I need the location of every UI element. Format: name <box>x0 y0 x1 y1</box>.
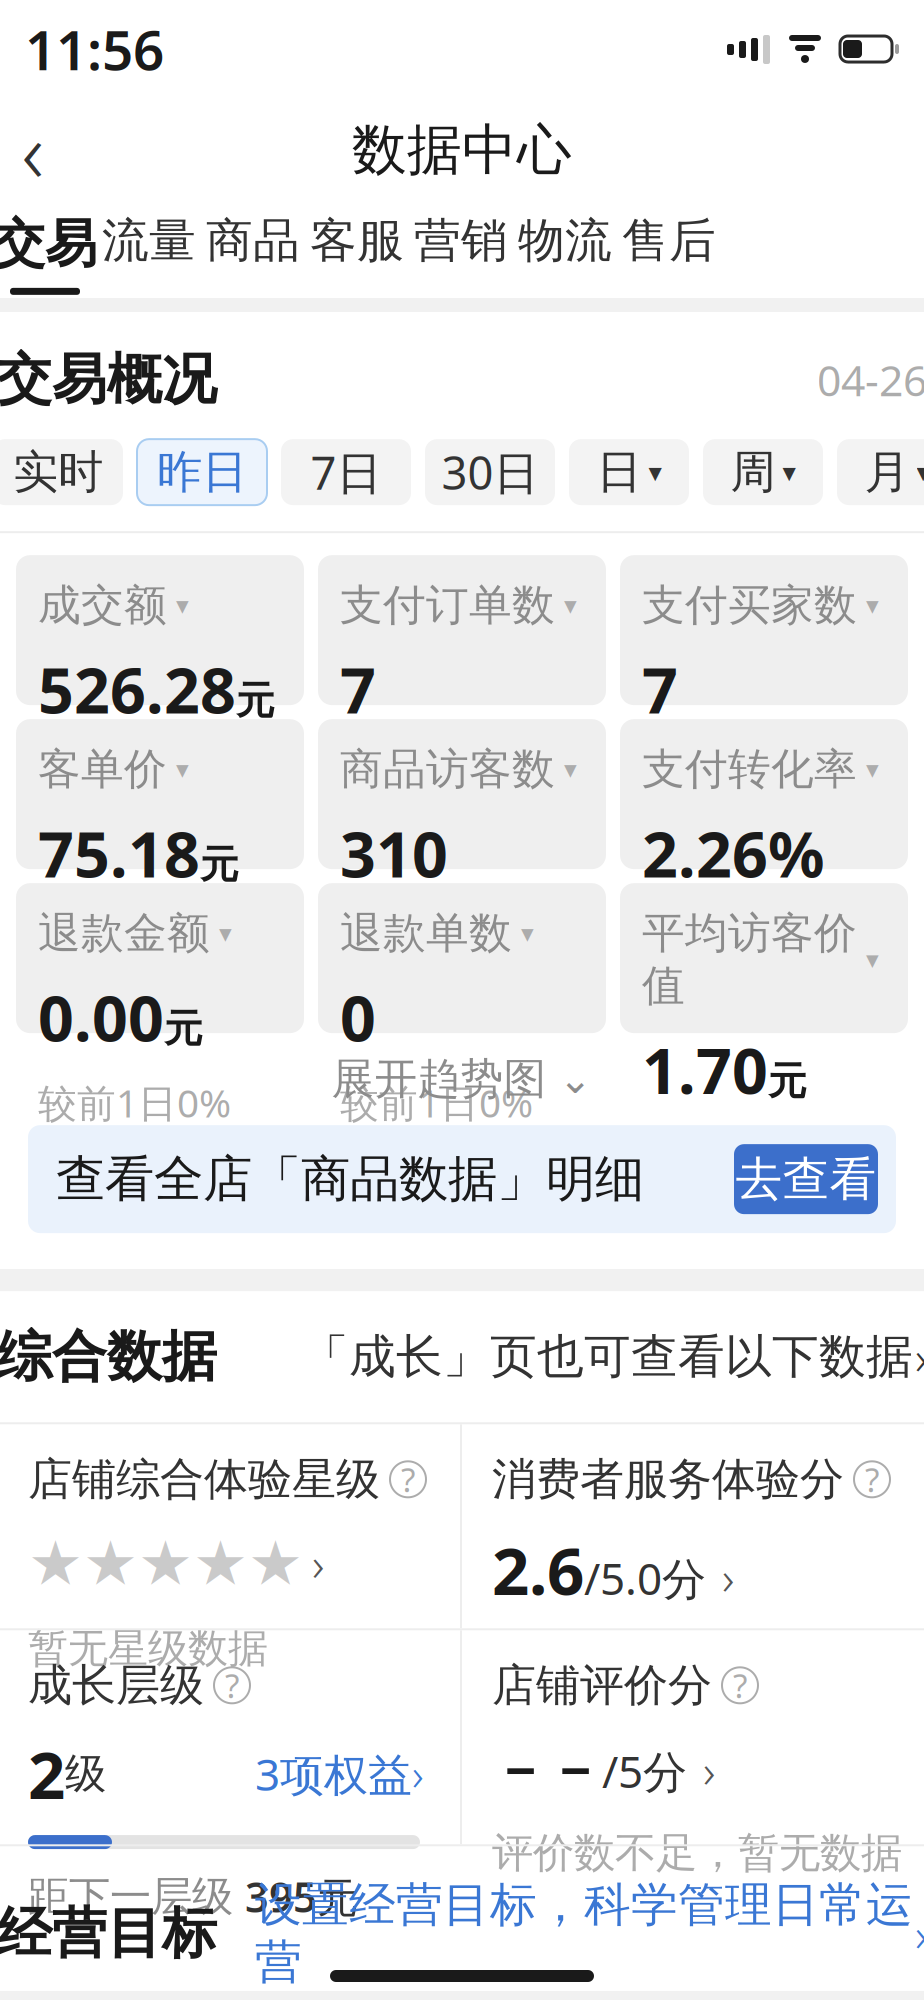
staticText: 距下一层级 <box>28 1871 245 1922</box>
button[interactable]: Back <box>0 105 79 195</box>
button[interactable]: 设置经营目标，科学管理日常运营 <box>255 1876 924 1991</box>
staticText: 7 <box>642 648 678 731</box>
staticText: 店铺综合体验星级 <box>28 1452 380 1506</box>
button[interactable]: 展开趋势图 <box>0 1033 924 1125</box>
staticText: ↑ <box>440 777 475 824</box>
staticText: 周 <box>730 444 775 500</box>
staticText: ▾ <box>564 591 577 620</box>
staticText: 暂无星级数据 <box>28 1624 268 1673</box>
staticText: 交易概况 <box>0 346 217 413</box>
staticText: ▾ <box>648 457 661 487</box>
button[interactable]: 30日 <box>425 439 555 505</box>
button[interactable]: 月 <box>837 439 924 505</box>
staticText: ▾ <box>219 919 232 948</box>
staticText: ↑ <box>138 777 173 824</box>
staticText: 元 <box>768 1057 807 1105</box>
staticText: › <box>915 1903 924 1965</box>
staticText: 退款金额 <box>38 907 210 959</box>
staticText: 0% <box>177 1077 231 1128</box>
button[interactable]: 营销 <box>409 212 513 298</box>
staticText: ‹ <box>21 93 44 207</box>
staticText: /5.0分 <box>584 1549 706 1607</box>
staticText: 流量 <box>102 212 196 269</box>
staticText: ▾ <box>521 919 534 948</box>
button[interactable]: 支付买家数 <box>620 555 908 705</box>
staticText: 395元 <box>245 1869 358 1924</box>
staticText: 6.16% <box>777 1129 853 1232</box>
staticText: ▾ <box>916 457 924 487</box>
button[interactable]: 7日 <box>281 439 411 505</box>
button[interactable]: 商品 <box>201 212 305 298</box>
staticText: 75.18 <box>38 812 200 895</box>
staticText: 较前1日 <box>38 751 138 849</box>
staticText: 较前1日 <box>642 915 742 1013</box>
button[interactable]: 平均访客价值 <box>620 883 908 1033</box>
staticText: /5分 <box>602 1742 687 1800</box>
staticText: 2.26% <box>642 812 825 895</box>
staticText: ↓ <box>742 1157 777 1204</box>
button[interactable]: 支付订单数 <box>318 555 606 705</box>
button[interactable]: 退款金额 <box>16 883 304 1033</box>
staticText: 0.00 <box>38 976 164 1059</box>
staticText: 3项权益 <box>255 1744 412 1803</box>
button[interactable]: 成长层级 <box>0 1630 460 1844</box>
staticText: › <box>915 1326 924 1388</box>
staticText: 查看全店「商品数据」明细 <box>56 1149 644 1209</box>
staticText: 11:56 <box>25 13 164 85</box>
button[interactable]: 日 <box>569 439 689 505</box>
staticText: › <box>722 1546 734 1608</box>
staticText: 级 <box>65 1748 106 1799</box>
staticText: 13.74% <box>777 913 875 1015</box>
staticText: 0% <box>479 1077 533 1128</box>
button[interactable]: 查看全店「商品数据」明细 <box>28 1125 896 1233</box>
staticText: ? <box>865 1457 879 1501</box>
button[interactable]: 商品访客数 <box>318 719 606 869</box>
staticText: 支付订单数 <box>340 579 555 631</box>
staticText: 40.00% <box>475 749 573 851</box>
button[interactable]: 交易 <box>0 212 97 298</box>
staticText: 昨日 <box>157 444 247 500</box>
staticText: 客单价 <box>38 743 167 795</box>
staticText: 较前1日 <box>340 751 440 849</box>
staticText: 支付买家数 <box>642 579 857 631</box>
staticText: 去查看 <box>735 1150 876 1208</box>
staticText: 支付转化率 <box>642 743 857 795</box>
staticText: ? <box>401 1457 415 1501</box>
button[interactable]: 售后 <box>617 212 721 298</box>
staticText: 商品访客数 <box>340 743 555 795</box>
staticText: 30日 <box>441 442 538 502</box>
button[interactable]: 昨日 <box>137 439 267 505</box>
button[interactable]: 店铺评价分 <box>462 1630 924 1844</box>
staticText: 「成长」页也可查看以下数据 <box>302 1328 913 1385</box>
staticText: 较前1日 <box>38 915 138 1013</box>
staticText: 展开趋势图 <box>331 1053 546 1105</box>
staticText: ↑ <box>440 941 475 988</box>
button[interactable]: 成交额 <box>16 555 304 705</box>
staticText: 40.00% <box>777 749 875 851</box>
button[interactable]: 消费者服务体验分 <box>462 1424 924 1628</box>
button[interactable]: 流量 <box>97 212 201 298</box>
staticText: 较前1日 <box>340 915 440 1013</box>
button[interactable]: 退款单数 <box>318 883 606 1033</box>
staticText: ▾ <box>176 591 189 620</box>
button[interactable]: 「成长」页也可查看以下数据 <box>302 1326 924 1388</box>
button[interactable]: 实时 <box>0 439 123 505</box>
button[interactable]: 周 <box>703 439 823 505</box>
staticText: › <box>703 1739 715 1801</box>
staticText: 实时 <box>13 444 103 500</box>
staticText: 310 <box>340 812 448 895</box>
staticText: ↑ <box>138 941 173 988</box>
staticText: 7 <box>340 648 376 731</box>
staticText: 04-26 <box>817 351 924 408</box>
button[interactable]: 物流 <box>513 212 617 298</box>
button[interactable]: 客单价 <box>16 719 304 869</box>
button[interactable]: 支付转化率 <box>620 719 908 869</box>
staticText: 元 <box>236 677 275 724</box>
staticText: 营销 <box>414 212 508 269</box>
staticText: ▾ <box>866 755 879 784</box>
staticText: ▾ <box>564 755 577 784</box>
button[interactable]: 店铺综合体验星级 <box>0 1424 460 1628</box>
staticText: 较前1日 <box>642 1131 742 1230</box>
staticText: 526.28 <box>38 648 236 731</box>
button[interactable]: 客服 <box>305 212 409 298</box>
